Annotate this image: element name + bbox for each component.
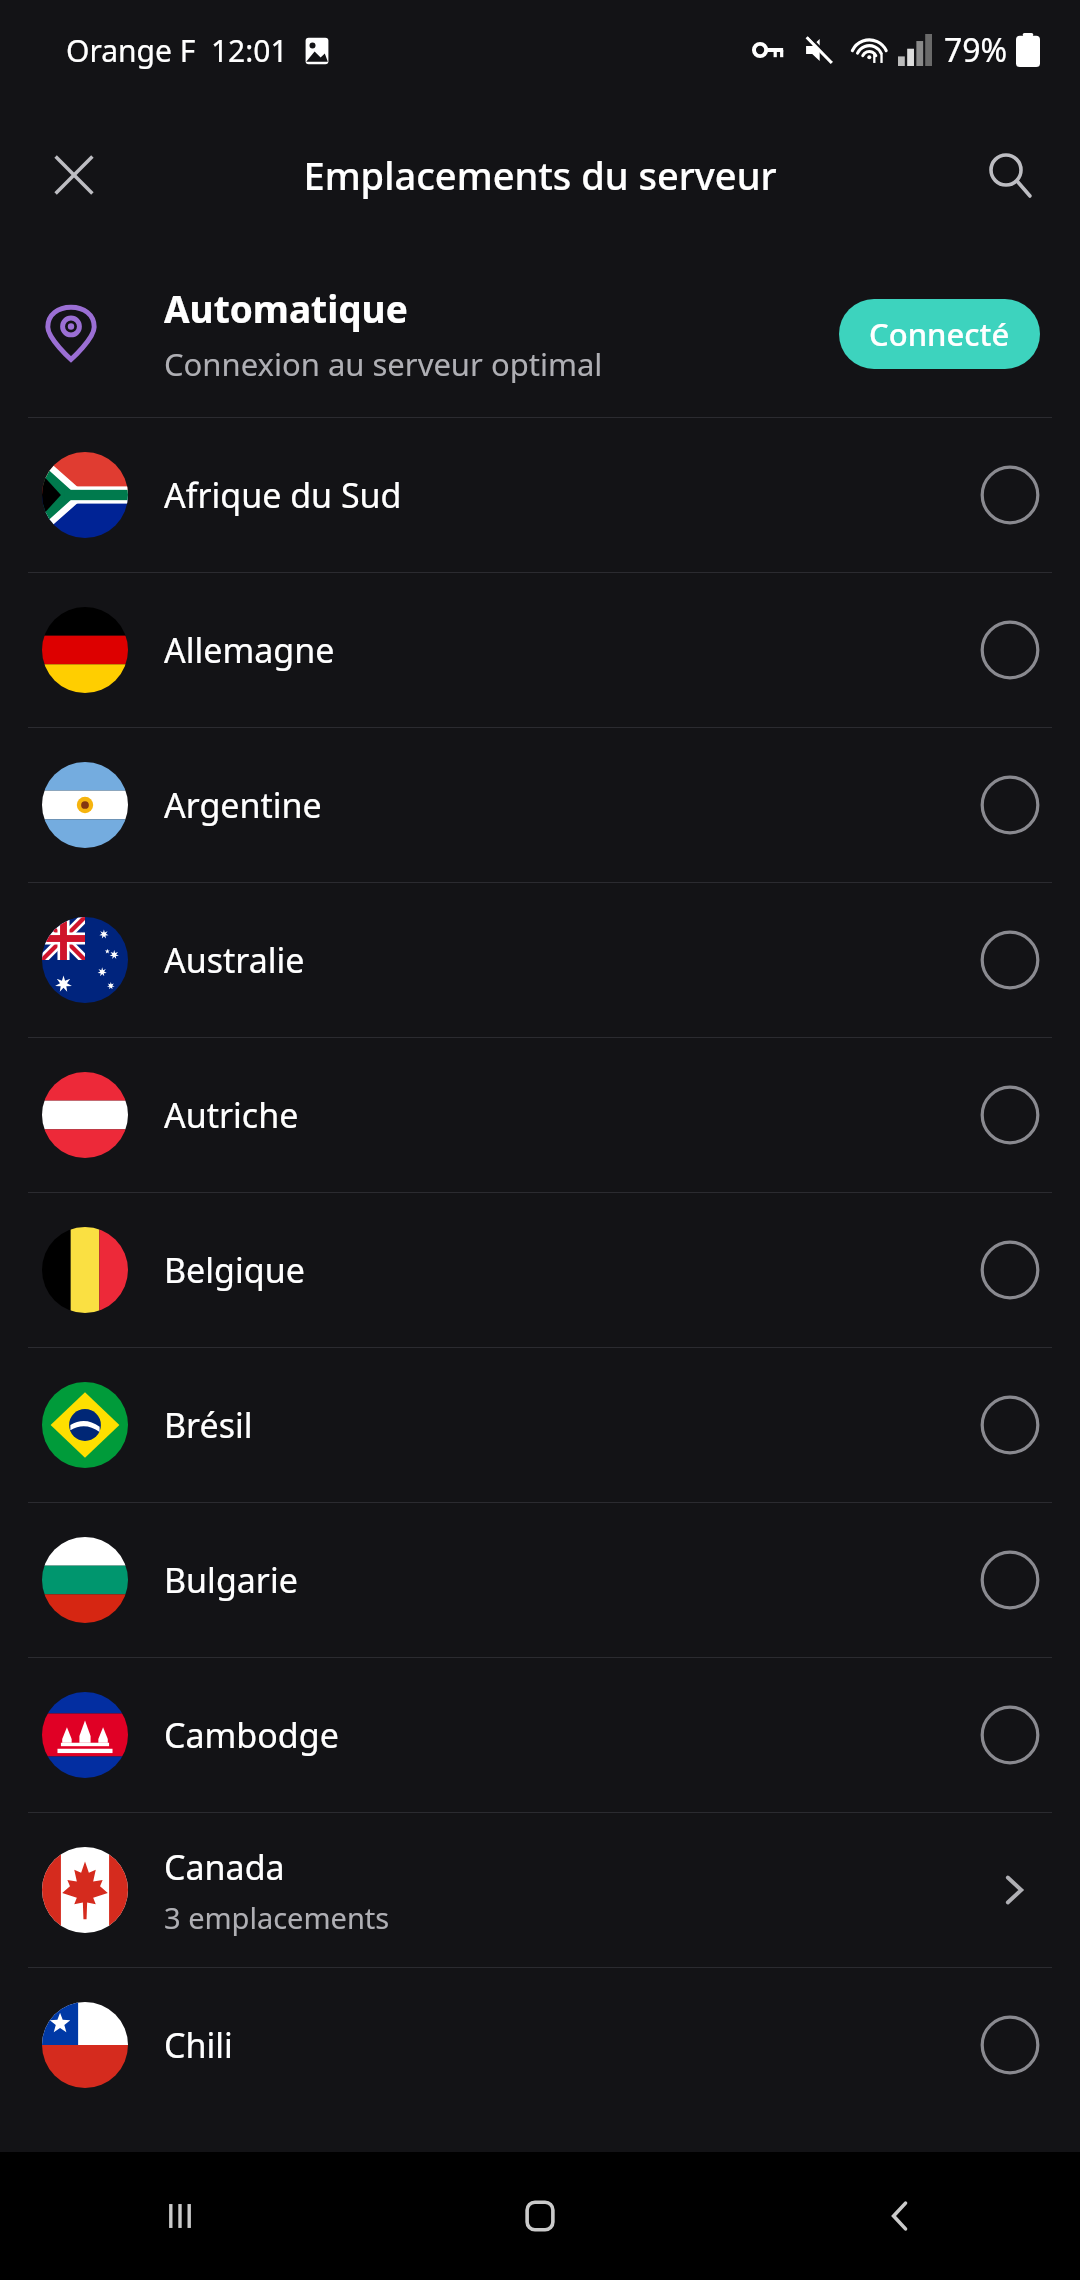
button[interactable]: Retour: [720, 2152, 1080, 2280]
staticText: Emplacements du serveur: [303, 149, 777, 201]
staticText: Autriche: [164, 1092, 299, 1138]
button[interactable]: Canada: [0, 1813, 1080, 1967]
staticText: Belgique: [164, 1247, 305, 1293]
staticText: 3 emplacements: [164, 1898, 390, 1937]
button[interactable]: Autriche: [0, 1038, 1080, 1192]
button[interactable]: Chili: [0, 1968, 1080, 2122]
staticText: Canada: [164, 1844, 285, 1890]
button[interactable]: Applications récentes: [0, 2152, 360, 2280]
button[interactable]: Afrique du Sud: [0, 418, 1080, 572]
button[interactable]: Argentine: [0, 728, 1080, 882]
button[interactable]: Connecté: [839, 299, 1040, 369]
staticText: Bulgarie: [164, 1557, 298, 1603]
button[interactable]: Belgique: [0, 1193, 1080, 1347]
staticText: Cambodge: [164, 1712, 339, 1758]
staticText: Allemagne: [164, 627, 335, 673]
button[interactable]: Allemagne: [0, 573, 1080, 727]
button[interactable]: Rechercher: [976, 141, 1044, 209]
button[interactable]: Bulgarie: [0, 1503, 1080, 1657]
staticText: Australie: [164, 937, 305, 983]
staticText: Afrique du Sud: [164, 472, 402, 518]
button[interactable]: Brésil: [0, 1348, 1080, 1502]
button[interactable]: Accueil: [360, 2152, 720, 2280]
staticText: Automatique: [164, 283, 408, 333]
button[interactable]: Australie: [0, 883, 1080, 1037]
staticText: Connexion au serveur optimal: [164, 343, 603, 385]
button[interactable]: Cambodge: [0, 1658, 1080, 1812]
staticText: Connecté: [869, 313, 1010, 355]
staticText: Argentine: [164, 782, 322, 828]
button[interactable]: Automatique: [0, 250, 1080, 417]
button[interactable]: Fermer: [40, 141, 108, 209]
staticText: Brésil: [164, 1402, 253, 1448]
other: Ouvrir: [988, 1864, 1040, 1916]
staticText: Orange F 12:01: [66, 30, 288, 71]
staticText: Chili: [164, 2022, 233, 2068]
staticText: 79%: [944, 28, 1008, 72]
